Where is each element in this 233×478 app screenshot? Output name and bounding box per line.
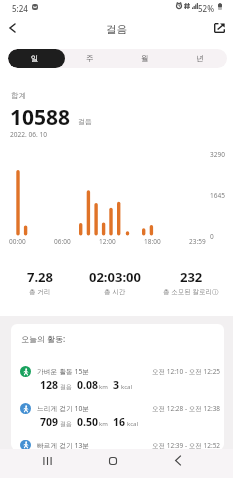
staticText: 3 [113, 378, 120, 392]
staticText: 3290 [210, 150, 225, 159]
staticText: 월 [141, 54, 149, 63]
staticText: 06:00 [54, 237, 71, 246]
button[interactable]: Back [166, 449, 189, 472]
button[interactable]: Recents [36, 449, 59, 472]
staticText: 232 [180, 268, 203, 286]
staticText: 709 [40, 415, 59, 429]
staticText: 주 [86, 54, 94, 63]
staticText: 0.50 [77, 415, 98, 429]
staticText: 12:00 [99, 237, 116, 246]
staticText: 총 거리 [29, 287, 51, 296]
staticText: 걸음 [60, 420, 72, 428]
staticText: 23:59 [189, 237, 206, 246]
button[interactable]: 일 [8, 49, 62, 68]
staticText: 16 [113, 415, 126, 429]
staticText: 0 [210, 232, 214, 241]
staticText: 총 시간 [104, 287, 126, 296]
staticText: 02:03:00 [89, 268, 141, 286]
staticText: 일 [31, 54, 39, 63]
staticText: 오전 12:10 - 오전 12:25 [152, 367, 221, 376]
staticText: 년 [196, 54, 204, 63]
staticText: 10588 [10, 103, 71, 132]
staticText: kcal [121, 383, 132, 391]
staticText: 빠르게 걷기 13분 [37, 441, 90, 450]
staticText: 18:00 [144, 237, 161, 246]
staticText: 합계 [11, 91, 26, 100]
staticText: 7.28 [27, 268, 53, 286]
staticText: 5:24 [12, 3, 28, 14]
staticText: 128 [40, 378, 59, 392]
staticText: kcal [127, 420, 138, 428]
staticText: 느리게 걷기 10분 [37, 404, 90, 413]
staticText: km [99, 420, 108, 428]
button[interactable]: Share [207, 16, 231, 40]
staticText: km [99, 383, 108, 391]
button[interactable]: 월 [117, 49, 172, 68]
button[interactable]: 232 [136, 268, 233, 296]
button[interactable]: 빠르게 걷기 13분 [11, 440, 224, 450]
button[interactable]: 주 [62, 49, 117, 68]
staticText: 걸음 [106, 23, 127, 36]
staticText: 오늘의 활동: [21, 333, 66, 344]
button[interactable]: 가벼운 활동 15분 [11, 366, 224, 403]
button[interactable]: 년 [172, 49, 227, 68]
staticText: 0.08 [77, 378, 98, 392]
staticText: 가벼운 활동 15분 [37, 367, 90, 376]
staticText: 오전 12:39 - 오전 12:52 [152, 441, 221, 450]
staticText: 걸음 [60, 383, 72, 391]
staticText: 52% [198, 3, 214, 14]
staticText: 오전 12:28 - 오전 12:38 [152, 404, 221, 413]
staticText: 00:00 [9, 237, 26, 246]
staticText: 2022. 06. 10 [10, 130, 48, 139]
button[interactable]: Back [0, 16, 25, 41]
staticText: 총 소모된 칼로리ⓘ [163, 287, 219, 296]
button[interactable]: Home [101, 449, 124, 472]
button[interactable]: 02:03:00 [60, 268, 170, 296]
button[interactable]: 느리게 걷기 10분 [11, 403, 224, 440]
staticText: 1645 [210, 191, 225, 200]
staticText: 걸음 [78, 117, 92, 126]
button[interactable]: 7.28 [0, 268, 95, 296]
